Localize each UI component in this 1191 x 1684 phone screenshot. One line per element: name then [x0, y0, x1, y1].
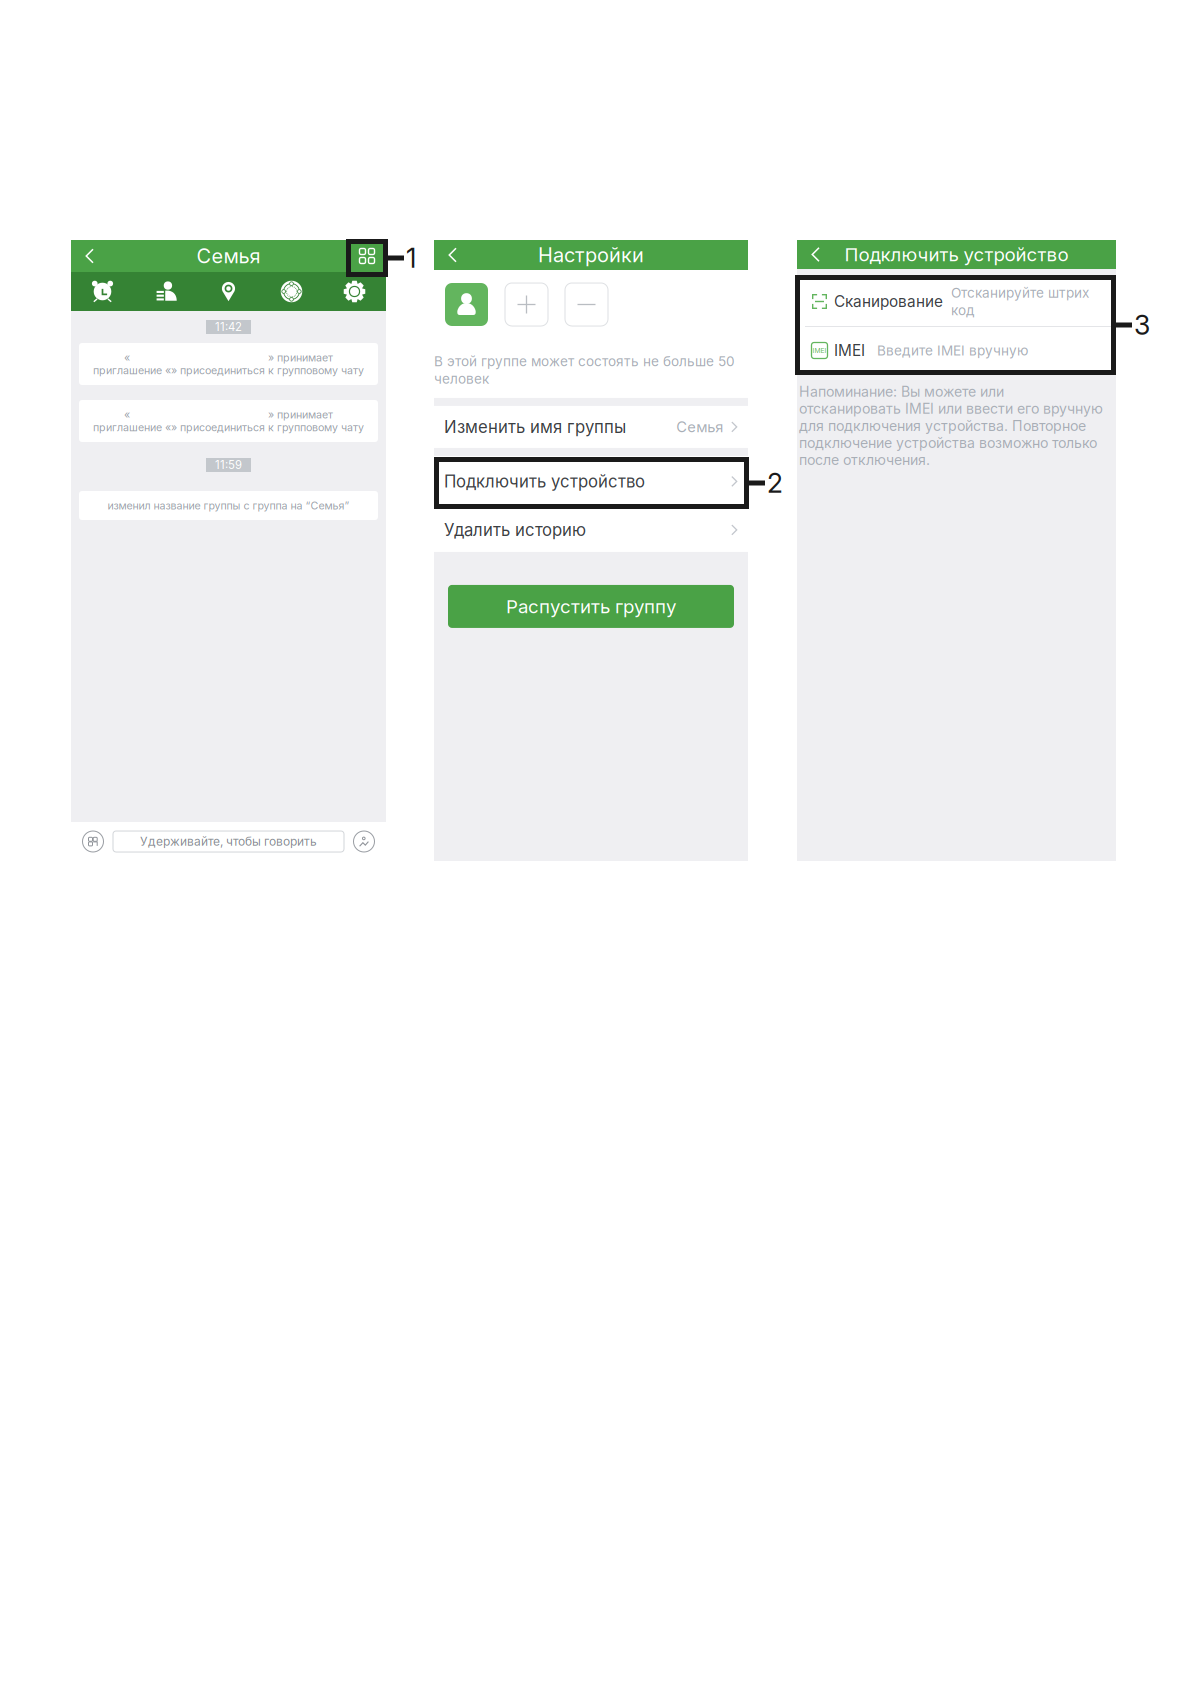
button[interactable]: Настройки — [323, 272, 386, 311]
button[interactable]: Подключить устройство — [434, 456, 748, 508]
staticText: Удалить историю — [444, 520, 586, 540]
button[interactable]: Назад — [800, 240, 832, 269]
staticText: код — [951, 302, 975, 318]
staticText: Сканирование — [834, 292, 943, 311]
button[interactable]: Клавиатура — [79, 827, 107, 855]
button[interactable]: Изменить имя группы — [434, 406, 748, 448]
staticText: 2 — [767, 467, 783, 499]
staticText: IMEI — [834, 341, 865, 360]
staticText: приглашение «» присоединиться к группово… — [93, 421, 364, 434]
button[interactable]: Удалить историю — [434, 508, 748, 552]
button[interactable]: Отправить фото — [350, 827, 378, 855]
button[interactable]: Участники — [134, 272, 197, 311]
staticText: Распустить группу — [506, 595, 676, 618]
staticText: Напоминание: Вы можете или отсканировать… — [799, 383, 1103, 468]
staticText: Отсканируйте штрих — [951, 284, 1089, 301]
staticText: Настройки — [538, 243, 644, 267]
button[interactable]: Будильник — [71, 272, 134, 311]
staticText: IMEI — [812, 346, 826, 355]
button[interactable]: Поиск — [260, 272, 323, 311]
staticText: приглашение «» присоединиться к группово… — [93, 364, 364, 377]
button[interactable]: Удерживайте, чтобы говорить — [113, 831, 344, 852]
button[interactable]: Местоположение — [197, 272, 260, 311]
staticText: Удерживайте, чтобы говорить — [140, 834, 317, 849]
staticText: Семья — [196, 244, 260, 268]
staticText: 3 — [1134, 309, 1150, 341]
button[interactable]: Сканирование — [797, 277, 1116, 326]
staticText: Введите IMEI вручную — [877, 342, 1028, 359]
button[interactable]: Удалить участника — [565, 283, 608, 326]
staticText: Подключить устройство — [844, 243, 1068, 266]
staticText: 1 — [406, 242, 416, 274]
staticText: изменил название группы с группа на “Сем… — [107, 499, 349, 512]
button[interactable]: Назад — [74, 240, 106, 272]
staticText: 11:59 — [215, 458, 242, 472]
button[interactable]: Распустить группу — [434, 585, 748, 628]
button[interactable]: Назад — [437, 240, 469, 270]
button[interactable]: Участники группы — [351, 240, 383, 272]
staticText: Подключить устройство — [444, 471, 645, 491]
staticText: Семья — [676, 418, 723, 436]
staticText: человек — [434, 370, 489, 387]
button[interactable]: IMEI — [797, 327, 1116, 374]
staticText: 11:42 — [215, 320, 242, 334]
button[interactable]: Добавить участника — [505, 283, 548, 326]
staticText: « » принимает — [124, 408, 333, 421]
staticText: Изменить имя группы — [444, 417, 626, 437]
staticText: « » принимает — [124, 351, 333, 364]
staticText: В этой группе может состоять не больше 5… — [434, 353, 735, 369]
